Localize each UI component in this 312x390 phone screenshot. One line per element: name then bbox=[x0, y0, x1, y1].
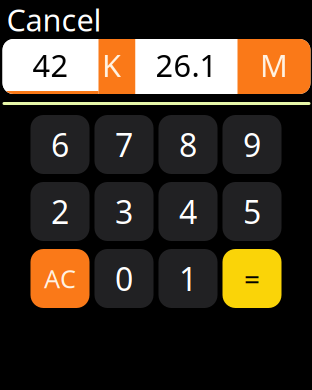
staticText: 0 bbox=[115, 257, 133, 300]
staticText: AC bbox=[44, 262, 76, 295]
button[interactable]: 26.1 bbox=[135, 39, 237, 94]
button[interactable]: 0 bbox=[94, 249, 153, 308]
button[interactable]: 4 bbox=[158, 182, 217, 241]
staticText: 7 bbox=[115, 123, 133, 166]
button[interactable]: 8 bbox=[158, 115, 217, 174]
button[interactable]: 1 bbox=[158, 249, 217, 308]
staticText: 5 bbox=[243, 190, 261, 233]
staticText: Cancel bbox=[6, 0, 101, 40]
button[interactable]: 2 bbox=[30, 182, 89, 241]
staticText: 26.1 bbox=[155, 45, 217, 85]
button[interactable]: 5 bbox=[222, 182, 281, 241]
button[interactable]: 3 bbox=[94, 182, 153, 241]
button[interactable]: 7 bbox=[94, 115, 153, 174]
staticText: 2 bbox=[51, 190, 69, 233]
button[interactable]: M bbox=[237, 39, 310, 94]
staticText: K bbox=[102, 45, 121, 85]
staticText: 4 bbox=[179, 190, 197, 233]
button[interactable]: 9 bbox=[222, 115, 281, 174]
button[interactable]: = bbox=[222, 249, 281, 308]
button[interactable]: 42 bbox=[2, 39, 98, 94]
staticText: 9 bbox=[243, 123, 261, 166]
staticText: 8 bbox=[179, 123, 197, 166]
button[interactable]: 6 bbox=[30, 115, 89, 174]
staticText: 3 bbox=[115, 190, 133, 233]
staticText: M bbox=[260, 45, 288, 85]
staticText: 6 bbox=[51, 123, 69, 166]
button[interactable]: AC bbox=[30, 249, 89, 308]
button[interactable]: Cancel bbox=[1, 0, 101, 39]
staticText: 1 bbox=[179, 257, 197, 300]
staticText: = bbox=[244, 260, 260, 297]
staticText: 42 bbox=[32, 45, 68, 85]
button[interactable]: K bbox=[98, 39, 135, 94]
